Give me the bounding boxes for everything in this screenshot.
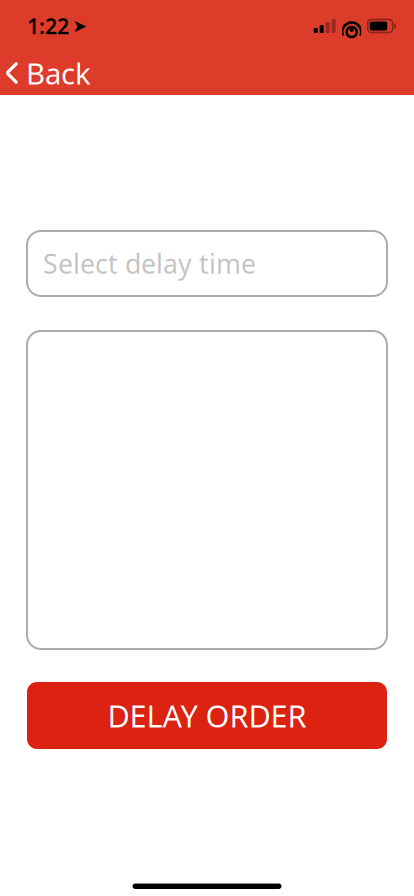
staticText: DELAY ORDER	[107, 695, 306, 736]
staticText: Select delay time	[43, 246, 256, 281]
staticText: Back	[26, 53, 91, 92]
button[interactable]: DELAY ORDER	[27, 682, 387, 749]
staticText: 1:22	[27, 12, 69, 40]
staticText: ➤	[72, 16, 87, 36]
button[interactable]: Select delay time	[27, 231, 387, 296]
button[interactable]: Delay reason notes	[27, 331, 387, 649]
button[interactable]: Back	[0, 51, 103, 95]
